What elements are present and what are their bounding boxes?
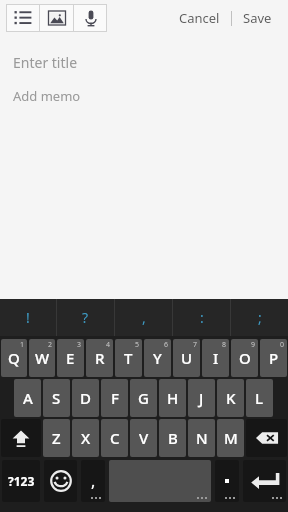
button[interactable]: ! (0, 299, 56, 336)
staticText: C (110, 428, 120, 448)
button[interactable]: Shift (1, 419, 41, 457)
staticText: , (142, 308, 146, 327)
staticText: 1 (20, 340, 25, 350)
button[interactable]: Save (237, 5, 278, 31)
button[interactable]: U (173, 339, 200, 377)
staticText: S (52, 388, 61, 408)
staticText: Enter title (13, 53, 78, 72)
staticText: L (255, 388, 264, 408)
staticText: B (168, 428, 178, 448)
staticText: M (224, 428, 238, 448)
button[interactable]: C (101, 419, 128, 457)
button[interactable]: R (86, 339, 113, 377)
button[interactable]: : (173, 299, 230, 336)
button[interactable]: Z (43, 419, 70, 457)
button[interactable]: J (188, 379, 215, 417)
staticText: 2 (48, 340, 53, 350)
staticText: N (196, 428, 208, 448)
staticText: T (124, 348, 133, 368)
staticText: U (181, 348, 193, 368)
button[interactable]: Emoji (44, 460, 77, 502)
button[interactable]: E (57, 339, 84, 377)
button[interactable]: S (43, 379, 70, 417)
button[interactable]: B (159, 419, 186, 457)
staticText: Add memo (13, 87, 81, 105)
button[interactable]: Q (1, 339, 27, 377)
staticText: ; (258, 308, 262, 327)
button[interactable]: V (130, 419, 157, 457)
staticText: I (213, 348, 219, 368)
button[interactable]: Comma (81, 460, 105, 502)
button[interactable]: List (6, 4, 39, 32)
staticText: 4 (106, 340, 111, 350)
button[interactable]: X (72, 419, 99, 457)
staticText: , (91, 470, 96, 492)
button[interactable]: W (29, 339, 55, 377)
button[interactable]: ; (231, 299, 288, 336)
staticText: H (167, 388, 179, 408)
staticText: ! (26, 308, 30, 327)
button[interactable]: F (101, 379, 128, 417)
button[interactable]: P (260, 339, 287, 377)
button[interactable]: Y (144, 339, 171, 377)
staticText: W (35, 348, 50, 368)
staticText: P (269, 348, 279, 368)
staticText: D (80, 388, 91, 408)
button[interactable]: A (14, 379, 41, 417)
staticText: K (226, 388, 236, 408)
staticText: : (200, 308, 204, 327)
staticText: F (111, 388, 119, 408)
button[interactable]: Space (109, 460, 211, 502)
staticText: 7 (193, 340, 198, 350)
staticText: X (81, 428, 91, 448)
button[interactable]: I (202, 339, 229, 377)
button[interactable]: ? (57, 299, 114, 336)
staticText: E (66, 348, 75, 368)
staticText: A (23, 388, 33, 408)
staticText: Save (243, 9, 272, 27)
button[interactable]: O (231, 339, 258, 377)
button[interactable]: K (217, 379, 244, 417)
staticText: ? (82, 308, 89, 327)
button[interactable]: Enter title (13, 51, 288, 74)
button[interactable]: Enter (243, 460, 286, 502)
button[interactable]: M (217, 419, 244, 457)
button[interactable]: Symbols (2, 460, 40, 502)
staticText: G (138, 388, 149, 408)
button[interactable]: T (115, 339, 142, 377)
staticText: O (239, 348, 251, 368)
button[interactable]: Voice (74, 4, 107, 32)
staticText: Cancel (179, 9, 220, 27)
button[interactable]: , (115, 299, 172, 336)
staticText: Q (8, 348, 20, 368)
button[interactable]: G (130, 379, 157, 417)
button[interactable]: L (246, 379, 273, 417)
staticText: Y (153, 348, 162, 368)
button[interactable]: Image (40, 4, 73, 32)
button[interactable]: Backspace (246, 419, 287, 457)
staticText: ?123 (8, 473, 35, 489)
staticText: 8 (222, 340, 227, 350)
staticText: 0 (280, 340, 285, 350)
button[interactable]: Period (215, 460, 239, 502)
button[interactable]: H (159, 379, 186, 417)
staticText: 9 (251, 340, 256, 350)
staticText: V (139, 428, 149, 448)
staticText: J (199, 388, 204, 408)
staticText: Z (52, 428, 61, 448)
button[interactable]: N (188, 419, 215, 457)
button[interactable]: Add memo (13, 85, 288, 107)
staticText: 6 (164, 340, 169, 350)
staticText: 5 (135, 340, 140, 350)
staticText: R (95, 348, 105, 368)
staticText: 3 (77, 340, 82, 350)
button[interactable]: D (72, 379, 99, 417)
button[interactable]: Cancel (173, 5, 226, 31)
